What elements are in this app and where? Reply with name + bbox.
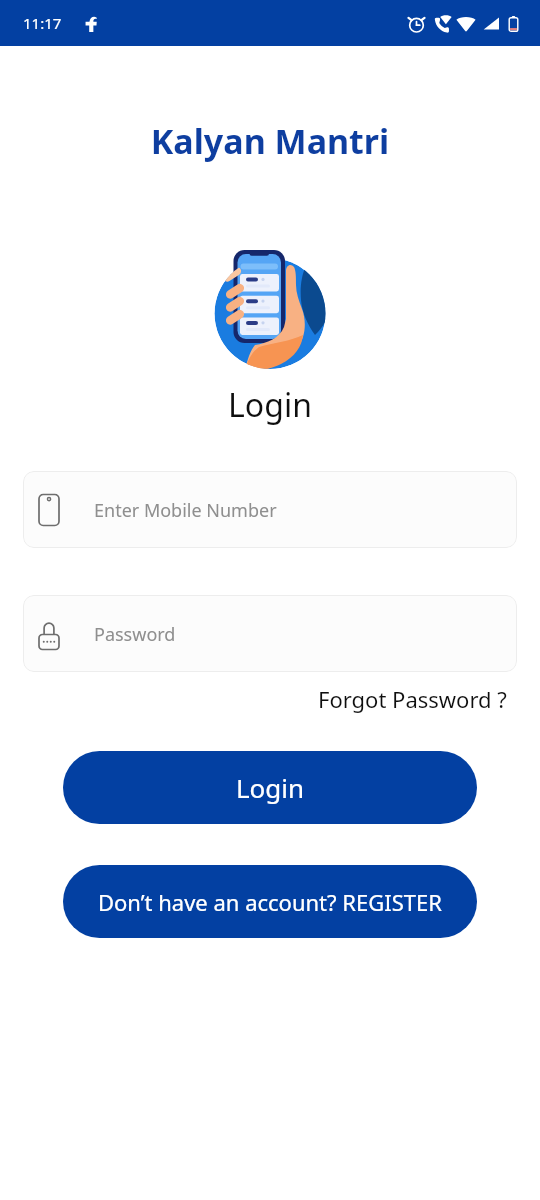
staticText: 11:17 <box>23 13 62 33</box>
staticText: Forgot Password ? <box>318 684 507 714</box>
button[interactable]: Don’t have an account? REGISTER <box>63 865 477 938</box>
staticText: Enter Mobile Number <box>94 498 277 523</box>
button[interactable]: Enter Mobile Number <box>23 471 517 548</box>
staticText: Kalyan Mantri <box>0 118 540 164</box>
button[interactable]: Login <box>63 751 477 824</box>
staticText: Login <box>236 770 305 805</box>
button[interactable]: Forgot Password ? <box>304 679 521 719</box>
button[interactable]: Password <box>23 595 517 672</box>
staticText: Login <box>0 383 540 427</box>
staticText: Don’t have an account? REGISTER <box>98 887 442 917</box>
other: Facebook <box>84 15 97 32</box>
staticText: Password <box>94 622 176 647</box>
